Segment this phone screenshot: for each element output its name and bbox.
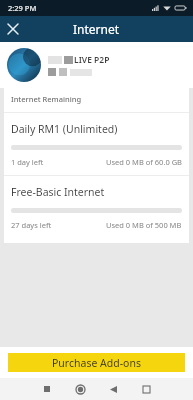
button[interactable]: Purchase Add-ons: [8, 353, 185, 372]
button[interactable]: Daily RM1 (Unlimited): [4, 113, 189, 175]
staticText: Free-Basic Internet: [11, 185, 105, 199]
staticText: 27 days left: [11, 220, 52, 230]
staticText: Used 0 MB of 500 MB: [106, 220, 182, 230]
staticText: LIVE P2P: [74, 54, 110, 66]
staticText: Purchase Add-ons: [52, 356, 141, 370]
button[interactable]: Back: [104, 380, 122, 398]
button[interactable]: Free-Basic Internet: [4, 176, 189, 238]
staticText: Used 0 MB of 60.0 GB: [106, 157, 182, 167]
button[interactable]: LIVE P2P: [0, 42, 193, 88]
button[interactable]: Menu: [38, 380, 56, 398]
staticText: Daily RM1 (Unlimited): [11, 122, 118, 136]
staticText: 2:29 PM: [8, 3, 37, 13]
button[interactable]: Close: [0, 16, 26, 42]
button[interactable]: Recents: [137, 380, 155, 398]
staticText: 1 day left: [11, 157, 44, 167]
staticText: Internet Remaining: [11, 94, 82, 104]
button[interactable]: Home: [71, 380, 89, 398]
staticText: Internet: [73, 21, 120, 37]
